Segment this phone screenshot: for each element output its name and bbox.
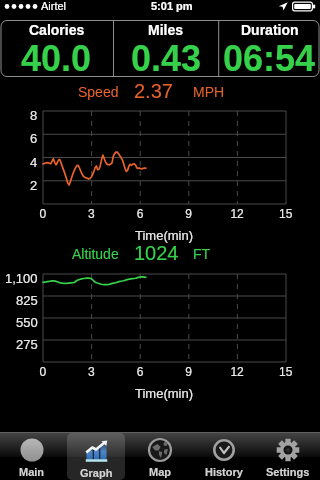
staticText: History [205, 466, 243, 478]
staticText: 06:54 [223, 38, 316, 77]
button[interactable]: Main [3, 433, 61, 480]
other: Graph [84, 438, 109, 463]
staticText: 5:01 pm [151, 0, 193, 12]
button[interactable]: History [195, 433, 253, 480]
staticText: 0.43 [131, 38, 202, 77]
button[interactable]: Graph [67, 433, 125, 480]
staticText: Duration [241, 22, 299, 38]
button[interactable]: Duration [219, 20, 320, 77]
staticText: Main [19, 466, 45, 478]
other: History [212, 438, 236, 462]
other: Map [148, 438, 172, 462]
staticText: Graph [80, 467, 113, 479]
staticText: 40.0 [21, 38, 92, 77]
staticText: Miles [148, 22, 184, 38]
button[interactable]: Map [131, 433, 189, 480]
staticText: Map [149, 466, 171, 478]
button[interactable]: Calories [0, 20, 113, 77]
button[interactable]: Settings [259, 433, 317, 480]
staticText: Settings [266, 466, 310, 478]
staticText: Airtel [41, 0, 67, 12]
staticText: Calories [29, 22, 85, 38]
other: Settings [276, 438, 300, 462]
button[interactable]: Miles [113, 20, 219, 77]
other: Main [20, 438, 44, 462]
